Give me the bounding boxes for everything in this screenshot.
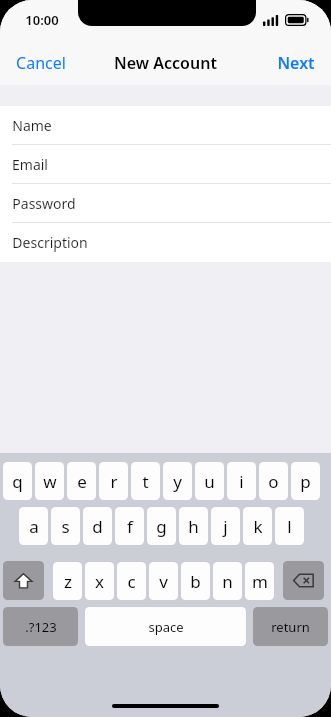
button[interactable]: w (35, 462, 64, 500)
button[interactable]: Password (0, 184, 331, 223)
button[interactable]: Cancel (0, 43, 82, 83)
button[interactable]: space (85, 607, 246, 646)
staticText: n (222, 570, 233, 593)
button[interactable]: return (253, 607, 328, 646)
staticText: Email (12, 155, 48, 174)
button[interactable]: o (259, 462, 288, 500)
button[interactable]: j (211, 507, 240, 545)
staticText: t (142, 470, 149, 493)
button[interactable]: e (67, 462, 96, 500)
staticText: q (12, 470, 23, 493)
button[interactable]: g (147, 507, 176, 545)
staticText: Next (277, 52, 315, 74)
staticText: w (43, 470, 57, 493)
button[interactable]: k (243, 507, 272, 545)
button[interactable]: Next (261, 43, 331, 83)
button[interactable]: v (149, 562, 178, 600)
button[interactable]: u (195, 462, 224, 500)
button[interactable]: z (53, 562, 82, 600)
button[interactable]: b (181, 562, 210, 600)
staticText: 10:00 (25, 11, 59, 29)
staticText: Description (12, 233, 88, 252)
button[interactable]: i (227, 462, 256, 500)
button[interactable]: l (275, 507, 304, 545)
button[interactable]: q (3, 462, 32, 500)
staticText: j (223, 515, 228, 538)
button[interactable]: r (99, 462, 128, 500)
staticText: Password (12, 194, 76, 213)
button[interactable]: Email (0, 145, 331, 184)
staticText: m (252, 570, 268, 593)
staticText: Cancel (16, 52, 66, 74)
staticText: New Account (114, 52, 217, 74)
button[interactable]: Delete (283, 561, 324, 600)
staticText: a (29, 515, 39, 538)
button[interactable]: m (245, 562, 274, 600)
staticText: g (156, 515, 167, 538)
button[interactable]: t (131, 462, 160, 500)
staticText: y (173, 470, 182, 493)
staticText: o (268, 470, 279, 493)
staticText: return (271, 618, 310, 636)
staticText: r (110, 470, 118, 493)
staticText: e (77, 470, 87, 493)
staticText: x (95, 570, 104, 593)
button[interactable]: n (213, 562, 242, 600)
button[interactable]: Shift (3, 561, 44, 600)
staticText: .?123 (25, 618, 57, 636)
staticText: b (190, 570, 201, 593)
button[interactable]: x (85, 562, 114, 600)
staticText: f (127, 515, 133, 538)
button[interactable]: s (51, 507, 80, 545)
staticText: p (300, 470, 311, 493)
button[interactable]: a (19, 507, 48, 545)
staticText: u (204, 470, 215, 493)
staticText: v (159, 570, 168, 593)
button[interactable]: Description (0, 223, 331, 262)
staticText: s (61, 515, 70, 538)
button[interactable]: h (179, 507, 208, 545)
staticText: d (92, 515, 103, 538)
button[interactable]: d (83, 507, 112, 545)
staticText: space (148, 618, 184, 636)
staticText: i (239, 470, 244, 493)
staticText: z (64, 570, 72, 593)
button[interactable]: f (115, 507, 144, 545)
button[interactable]: .?123 (3, 607, 78, 646)
staticText: l (287, 515, 292, 538)
button[interactable]: Name (0, 106, 331, 145)
staticText: c (127, 570, 136, 593)
staticText: k (253, 515, 263, 538)
button[interactable]: y (163, 462, 192, 500)
button[interactable]: p (291, 462, 320, 500)
button[interactable]: c (117, 562, 146, 600)
staticText: h (188, 515, 199, 538)
staticText: Name (12, 116, 52, 135)
